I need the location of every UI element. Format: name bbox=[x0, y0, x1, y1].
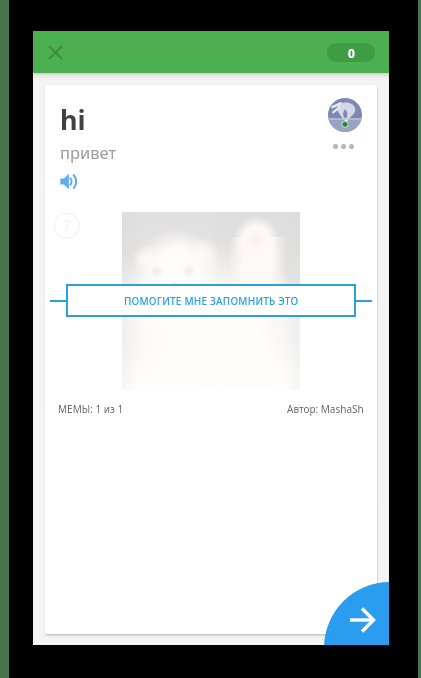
staticText: МЕМЫ: 1 из 1 bbox=[58, 402, 124, 416]
button[interactable]: Next card bbox=[324, 582, 389, 645]
staticText: 0 bbox=[348, 45, 355, 61]
button[interactable]: Help bbox=[53, 212, 80, 239]
staticText: Автор: MashaSh bbox=[287, 402, 364, 416]
button[interactable]: Close bbox=[39, 36, 71, 68]
button[interactable]: User avatar bbox=[328, 98, 362, 132]
staticText: hi bbox=[60, 101, 86, 138]
button[interactable]: 0 bbox=[327, 43, 375, 62]
staticText: привет bbox=[60, 141, 117, 163]
button[interactable]: Play pronunciation bbox=[60, 170, 82, 192]
button[interactable]: ПОМОГИТЕ МНЕ ЗАПОМНИТЬ ЭТО bbox=[66, 284, 356, 317]
button[interactable]: More options bbox=[329, 141, 358, 152]
staticText: ПОМОГИТЕ МНЕ ЗАПОМНИТЬ ЭТО bbox=[124, 294, 299, 308]
